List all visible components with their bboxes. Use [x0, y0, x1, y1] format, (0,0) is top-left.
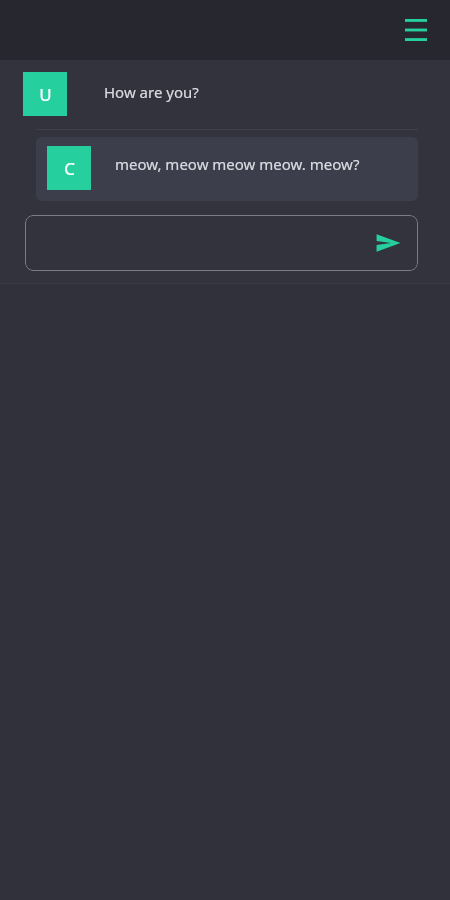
button[interactable]: C	[36, 137, 418, 201]
staticText: How are you?	[104, 82, 199, 102]
button[interactable]: Send	[366, 221, 410, 265]
button[interactable]: Send	[25, 215, 418, 271]
staticText: C	[64, 157, 75, 180]
button[interactable]: Menu	[394, 8, 438, 52]
staticText: U	[39, 83, 52, 106]
staticText: meow, meow meow meow. meow?	[115, 154, 360, 174]
button[interactable]: U	[23, 72, 418, 116]
